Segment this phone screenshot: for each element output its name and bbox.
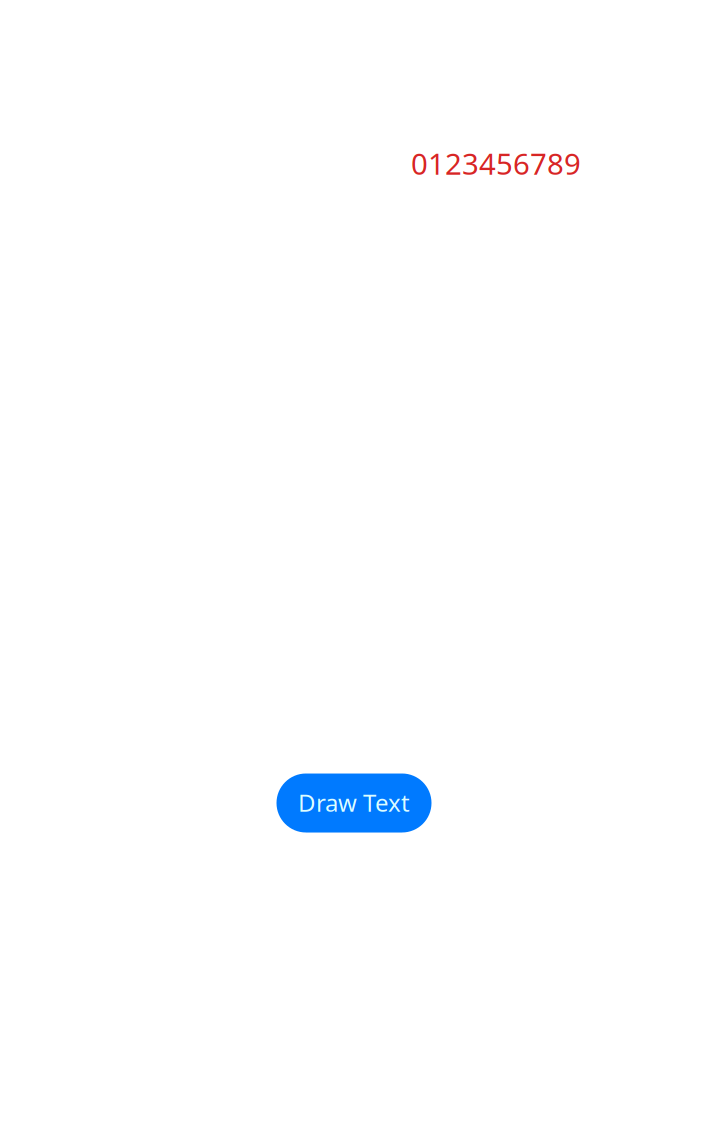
staticText: Draw Text — [298, 787, 410, 818]
staticText: 0123456789 — [411, 144, 581, 183]
button[interactable]: Draw Text — [276, 773, 431, 832]
